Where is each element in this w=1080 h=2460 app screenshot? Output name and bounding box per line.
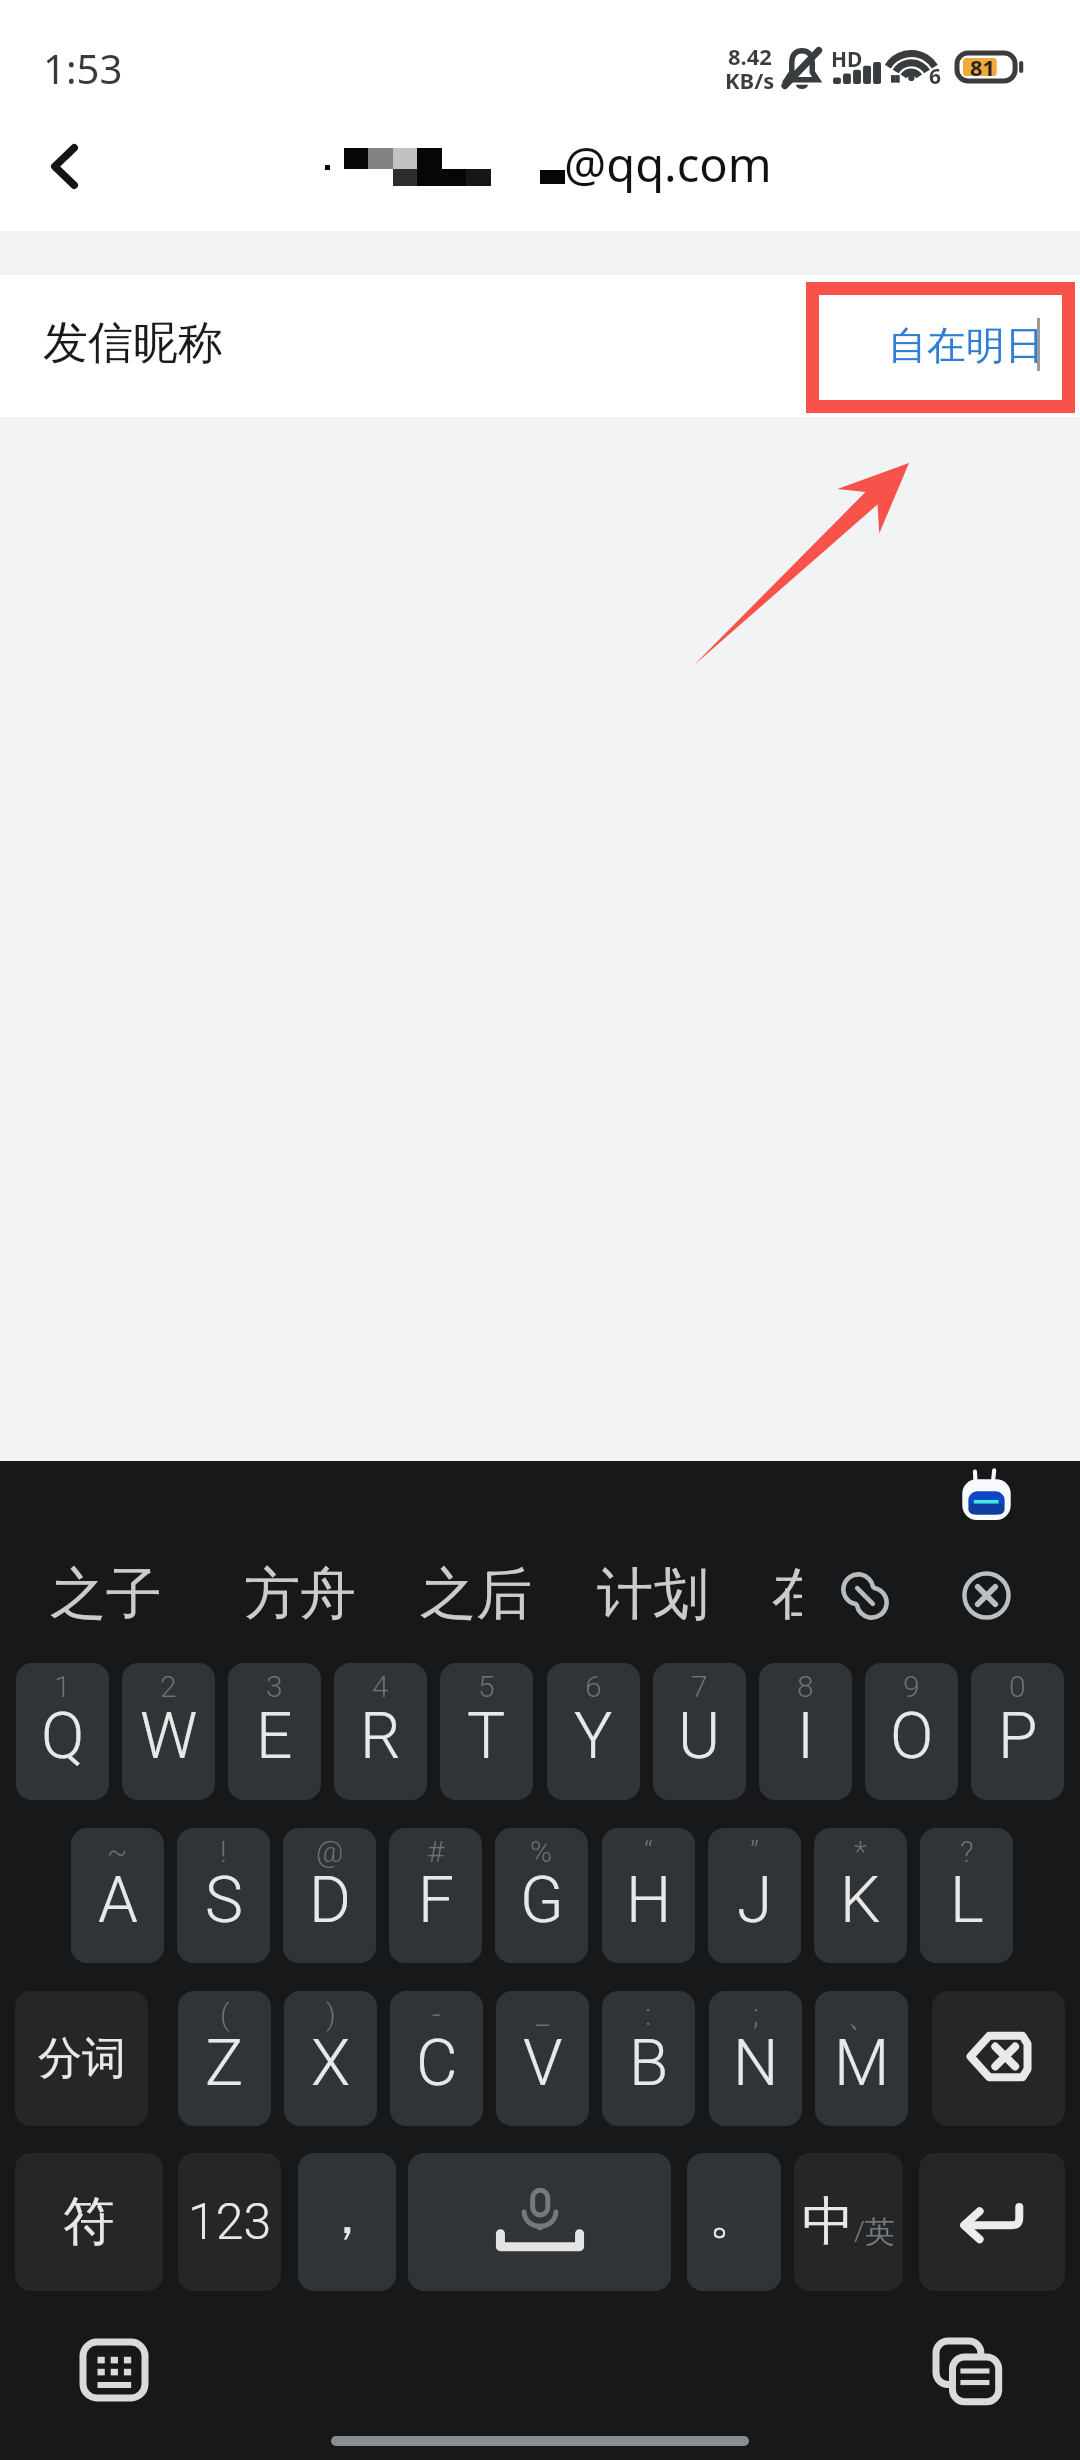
staticText: ( <box>220 1997 230 2032</box>
button[interactable]: ? <box>920 1828 1013 1963</box>
staticText: F <box>418 1863 454 1938</box>
staticText: 分词 <box>38 2031 126 2086</box>
button[interactable]: Language <box>794 2153 903 2291</box>
button[interactable]: Expand candidates <box>842 1573 888 1619</box>
staticText: W <box>140 1699 198 1774</box>
staticText: ? <box>960 1834 974 1869</box>
staticText: G <box>520 1863 564 1938</box>
button[interactable]: 方舟 <box>244 1559 356 1630</box>
button[interactable]: ( <box>178 1991 271 2126</box>
staticText: M <box>834 2026 890 2101</box>
staticText: S <box>205 1863 243 1938</box>
staticText: 1:53 <box>43 41 123 95</box>
staticText: 123 <box>188 2193 272 2252</box>
button[interactable]: Switch keyboard <box>81 2340 147 2400</box>
button[interactable]: 之子 <box>50 1559 162 1630</box>
staticText: ~ <box>107 1834 128 1869</box>
staticText: I <box>797 1699 815 1774</box>
staticText: U <box>678 1699 721 1774</box>
button[interactable]: 2 <box>122 1663 215 1800</box>
button[interactable]: 发信昵称 <box>0 275 1080 417</box>
staticText: 4 <box>372 1669 389 1704</box>
button[interactable]: ， <box>298 2153 396 2291</box>
staticText: - <box>432 1997 441 2032</box>
button[interactable]: Space <box>408 2153 671 2291</box>
staticText: V <box>523 2026 563 2101</box>
button[interactable]: @ <box>283 1828 376 1963</box>
staticText: 8.42 <box>728 41 772 71</box>
button[interactable]: 5 <box>440 1663 533 1800</box>
button[interactable]: 6 <box>547 1663 640 1800</box>
staticText: KB/s <box>725 65 775 95</box>
staticText: B <box>629 2026 669 2101</box>
button[interactable]: Back <box>6 120 118 231</box>
button[interactable]: 9 <box>865 1663 958 1800</box>
staticText: @ <box>316 1834 344 1869</box>
button[interactable]: 7 <box>653 1663 746 1800</box>
staticText: 1 <box>54 1669 71 1704</box>
staticText: 81 <box>970 52 996 82</box>
staticText: Y <box>574 1699 613 1774</box>
button[interactable]: AI assistant <box>959 1466 1014 1521</box>
button[interactable]: Enter <box>919 2153 1065 2291</box>
button[interactable]: 。 <box>687 2153 781 2291</box>
staticText: T <box>467 1699 506 1774</box>
button[interactable]: * <box>814 1828 907 1963</box>
staticText: Z <box>205 2026 244 2101</box>
staticText: ， <box>322 2185 372 2248</box>
button[interactable]: 8 <box>759 1663 852 1800</box>
staticText: 中 <box>802 2189 854 2255</box>
button[interactable]: ” <box>708 1828 801 1963</box>
button[interactable]: Backspace <box>932 1991 1065 2126</box>
button[interactable]: % <box>495 1828 588 1963</box>
button[interactable]: 0 <box>971 1663 1064 1800</box>
button[interactable]: “ <box>602 1828 695 1963</box>
staticText: 3 <box>266 1669 283 1704</box>
staticText: 。 <box>709 2185 759 2248</box>
button[interactable]: 4 <box>334 1663 427 1800</box>
staticText: @qq.com <box>564 132 772 196</box>
staticText: E <box>256 1699 293 1774</box>
staticText: J <box>737 1863 773 1938</box>
button[interactable]: 分词 <box>15 1991 148 2126</box>
staticText: P <box>998 1699 1038 1774</box>
staticText: 、 <box>847 1997 877 2035</box>
button[interactable]: 在 <box>772 1559 802 1631</box>
staticText: K <box>840 1863 881 1938</box>
staticText: D <box>309 1863 351 1938</box>
button[interactable]: Clipboard <box>934 2339 1000 2403</box>
staticText: N <box>733 2026 779 2101</box>
button[interactable]: ) <box>284 1991 377 2126</box>
staticText: * <box>854 1834 867 1869</box>
staticText: X <box>311 2026 351 2101</box>
button[interactable]: ! <box>177 1828 270 1963</box>
button[interactable]: # <box>389 1828 482 1963</box>
staticText: Q <box>41 1699 85 1774</box>
button[interactable]: - <box>390 1991 483 2126</box>
staticText: C <box>416 2026 458 2101</box>
button[interactable]: : <box>602 1991 695 2126</box>
button[interactable]: 计划 <box>597 1559 709 1630</box>
staticText: 8 <box>797 1669 814 1704</box>
staticText: # <box>427 1834 445 1869</box>
button[interactable]: 之后 <box>420 1559 532 1630</box>
button[interactable]: 3 <box>228 1663 321 1800</box>
button[interactable]: ; <box>709 1991 802 2126</box>
button[interactable]: _ <box>496 1991 589 2126</box>
button[interactable]: ~ <box>71 1828 164 1963</box>
button[interactable]: 123 <box>178 2153 281 2291</box>
staticText: ; <box>753 1997 759 2032</box>
button[interactable]: 、 <box>815 1991 908 2126</box>
staticText: 自在明日 <box>888 321 1044 370</box>
staticText: HD <box>831 45 863 74</box>
staticText: 6 <box>929 62 942 91</box>
staticText: /英 <box>854 2210 895 2251</box>
staticText: 符 <box>63 2189 115 2255</box>
staticText: 6 <box>585 1669 602 1704</box>
button[interactable]: 1 <box>16 1663 109 1800</box>
button[interactable]: 符 <box>15 2153 163 2291</box>
button[interactable]: Clear input <box>962 1571 1011 1620</box>
staticText: 在 <box>772 1559 802 1630</box>
staticText: _ <box>536 1997 549 2032</box>
staticText: 5 <box>478 1669 495 1704</box>
